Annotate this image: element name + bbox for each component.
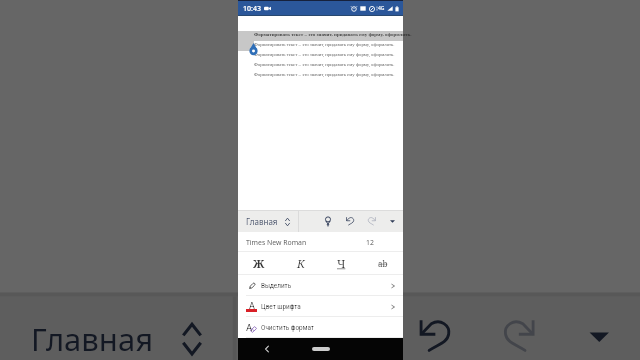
staticText: Главная: [31, 316, 155, 358]
button[interactable]: Форматировать текст – это значит, придав…: [238, 16, 403, 210]
button[interactable]: К: [280, 252, 321, 275]
staticText: Выделить: [261, 282, 292, 290]
staticText: ab: [378, 258, 388, 269]
button[interactable]: A: [238, 296, 403, 317]
staticText: Форматировать текст – это значит, придав…: [254, 72, 395, 77]
staticText: 12: [366, 238, 374, 247]
button[interactable]: Ч: [321, 252, 362, 275]
button[interactable]: Помощник: [318, 292, 380, 360]
button[interactable]: Форматировать текст – это значит, придав…: [0, 0, 640, 293]
button[interactable]: Ещё: [384, 210, 400, 232]
button[interactable]: A: [238, 317, 403, 338]
button[interactable]: Отменить: [342, 210, 358, 232]
staticText: A: [249, 301, 255, 312]
button[interactable]: Вернуть: [489, 292, 551, 360]
staticText: Форматировать текст – это значит, придав…: [254, 32, 412, 38]
staticText: Times New Roman: [246, 238, 307, 247]
staticText: Очистить формат: [261, 324, 314, 332]
staticText: Главная: [246, 216, 278, 227]
staticText: Ж: [253, 256, 265, 271]
button[interactable]: Главный экран: [312, 347, 330, 351]
button[interactable]: Выделить: [238, 275, 403, 296]
staticText: 10:43: [243, 4, 261, 14]
staticText: 4G: [378, 5, 385, 12]
staticText: Форматировать текст – это значит, придав…: [254, 42, 395, 47]
staticText: Форматировать текст – это значит, придав…: [254, 62, 395, 67]
button[interactable]: Times New Roman: [238, 232, 403, 252]
staticText: A: [246, 322, 253, 333]
button[interactable]: Назад: [260, 342, 274, 356]
button[interactable]: ab: [362, 252, 403, 275]
button[interactable]: Отменить: [403, 292, 465, 360]
button[interactable]: Ж: [238, 252, 280, 275]
button[interactable]: Главная: [238, 213, 296, 230]
button[interactable]: Вернуть: [364, 210, 380, 232]
button[interactable]: Помощник: [320, 210, 336, 232]
button[interactable]: Ещё: [566, 292, 628, 360]
staticText: Ч: [337, 256, 346, 271]
staticText: Форматировать текст – это значит, придав…: [254, 52, 395, 57]
button[interactable]: Главная: [0, 304, 225, 360]
staticText: К: [297, 256, 305, 271]
staticText: Цвет шрифта: [261, 303, 301, 311]
